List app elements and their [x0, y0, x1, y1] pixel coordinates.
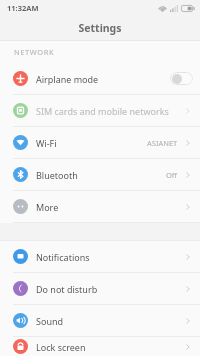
button[interactable]: More	[0, 191, 200, 222]
other: Open	[183, 284, 193, 294]
staticText: Do not disturb	[36, 283, 183, 295]
button[interactable]: Sound	[0, 305, 200, 336]
other: Open	[183, 342, 193, 352]
other: Open	[183, 202, 193, 212]
button[interactable]: Do not disturb	[0, 273, 200, 304]
other: Open	[183, 170, 193, 180]
staticText: Sound	[36, 315, 183, 327]
button[interactable]: Airplane mode toggle	[170, 72, 193, 85]
button[interactable]: Bluetooth	[0, 159, 200, 190]
button[interactable]: Notifications	[0, 241, 200, 272]
staticText: ASIANET	[147, 138, 178, 148]
button[interactable]: SIM cards and mobile networks	[0, 95, 200, 126]
staticText: NETWORK	[14, 47, 55, 57]
button[interactable]: Airplane mode	[0, 63, 200, 94]
button[interactable]: Wi-Fi	[0, 127, 200, 158]
staticText: Bluetooth	[36, 169, 166, 181]
button[interactable]: Lock screen	[0, 337, 200, 356]
staticText: Wi-Fi	[36, 137, 147, 149]
staticText: Airplane mode	[36, 73, 170, 85]
other: Open	[183, 138, 193, 148]
staticText: Lock screen	[36, 341, 183, 353]
staticText: SIM cards and mobile networks	[36, 105, 183, 117]
other: Open	[183, 316, 193, 326]
staticText: More	[36, 201, 183, 213]
other: Open	[183, 252, 193, 262]
staticText: Notifications	[36, 251, 183, 263]
other: Open	[183, 106, 193, 116]
staticText: 11:32AM	[7, 3, 39, 13]
staticText: Off	[166, 170, 178, 180]
staticText: Settings	[78, 21, 122, 35]
